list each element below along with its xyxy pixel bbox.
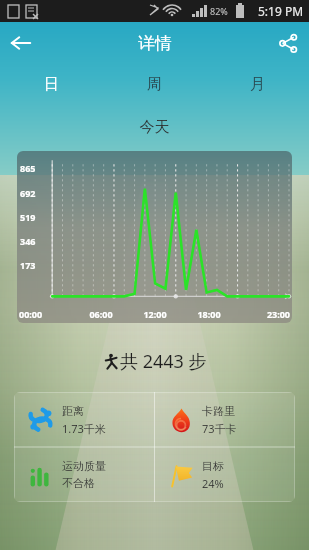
button[interactable]: 距离 [14, 392, 154, 447]
staticText: 卡路里 [202, 404, 235, 418]
staticText: 日 [44, 75, 59, 94]
staticText: 865 [20, 162, 36, 174]
staticText: 共 2443 步 [120, 349, 207, 374]
button[interactable]: Back [0, 22, 42, 64]
button[interactable]: 日 [0, 64, 103, 104]
staticText: 今天 [0, 118, 309, 137]
staticText: 12:00 [128, 308, 182, 320]
staticText: 详情 [138, 33, 172, 54]
staticText: 周 [147, 75, 162, 94]
staticText: 运动质量 [62, 459, 106, 473]
staticText: 月 [250, 75, 265, 94]
button[interactable]: Share [267, 22, 309, 64]
staticText: 73千卡 [202, 421, 237, 436]
button[interactable]: 运动质量 [14, 447, 154, 502]
staticText: 06:00 [74, 308, 128, 320]
staticText: 00:00 [19, 308, 74, 320]
staticText: 173 [20, 259, 36, 271]
button[interactable]: 周 [103, 64, 206, 104]
button[interactable]: 月 [206, 64, 309, 104]
staticText: 5:19 PM [258, 3, 304, 19]
staticText: 目标 [202, 459, 224, 473]
staticText: 24% [202, 476, 224, 491]
button[interactable]: 卡路里 [154, 392, 295, 447]
staticText: 18:00 [182, 308, 236, 320]
button[interactable]: 865 [17, 151, 292, 323]
staticText: 519 [20, 211, 36, 223]
staticText: 距离 [62, 404, 84, 418]
staticText: 692 [20, 187, 36, 199]
staticText: 1.73千米 [62, 421, 106, 436]
staticText: 不合格 [62, 476, 95, 490]
staticText: 23:00 [236, 308, 290, 320]
staticText: 82% [210, 5, 228, 17]
staticText: 346 [20, 235, 36, 247]
button[interactable]: 目标 [154, 447, 295, 502]
